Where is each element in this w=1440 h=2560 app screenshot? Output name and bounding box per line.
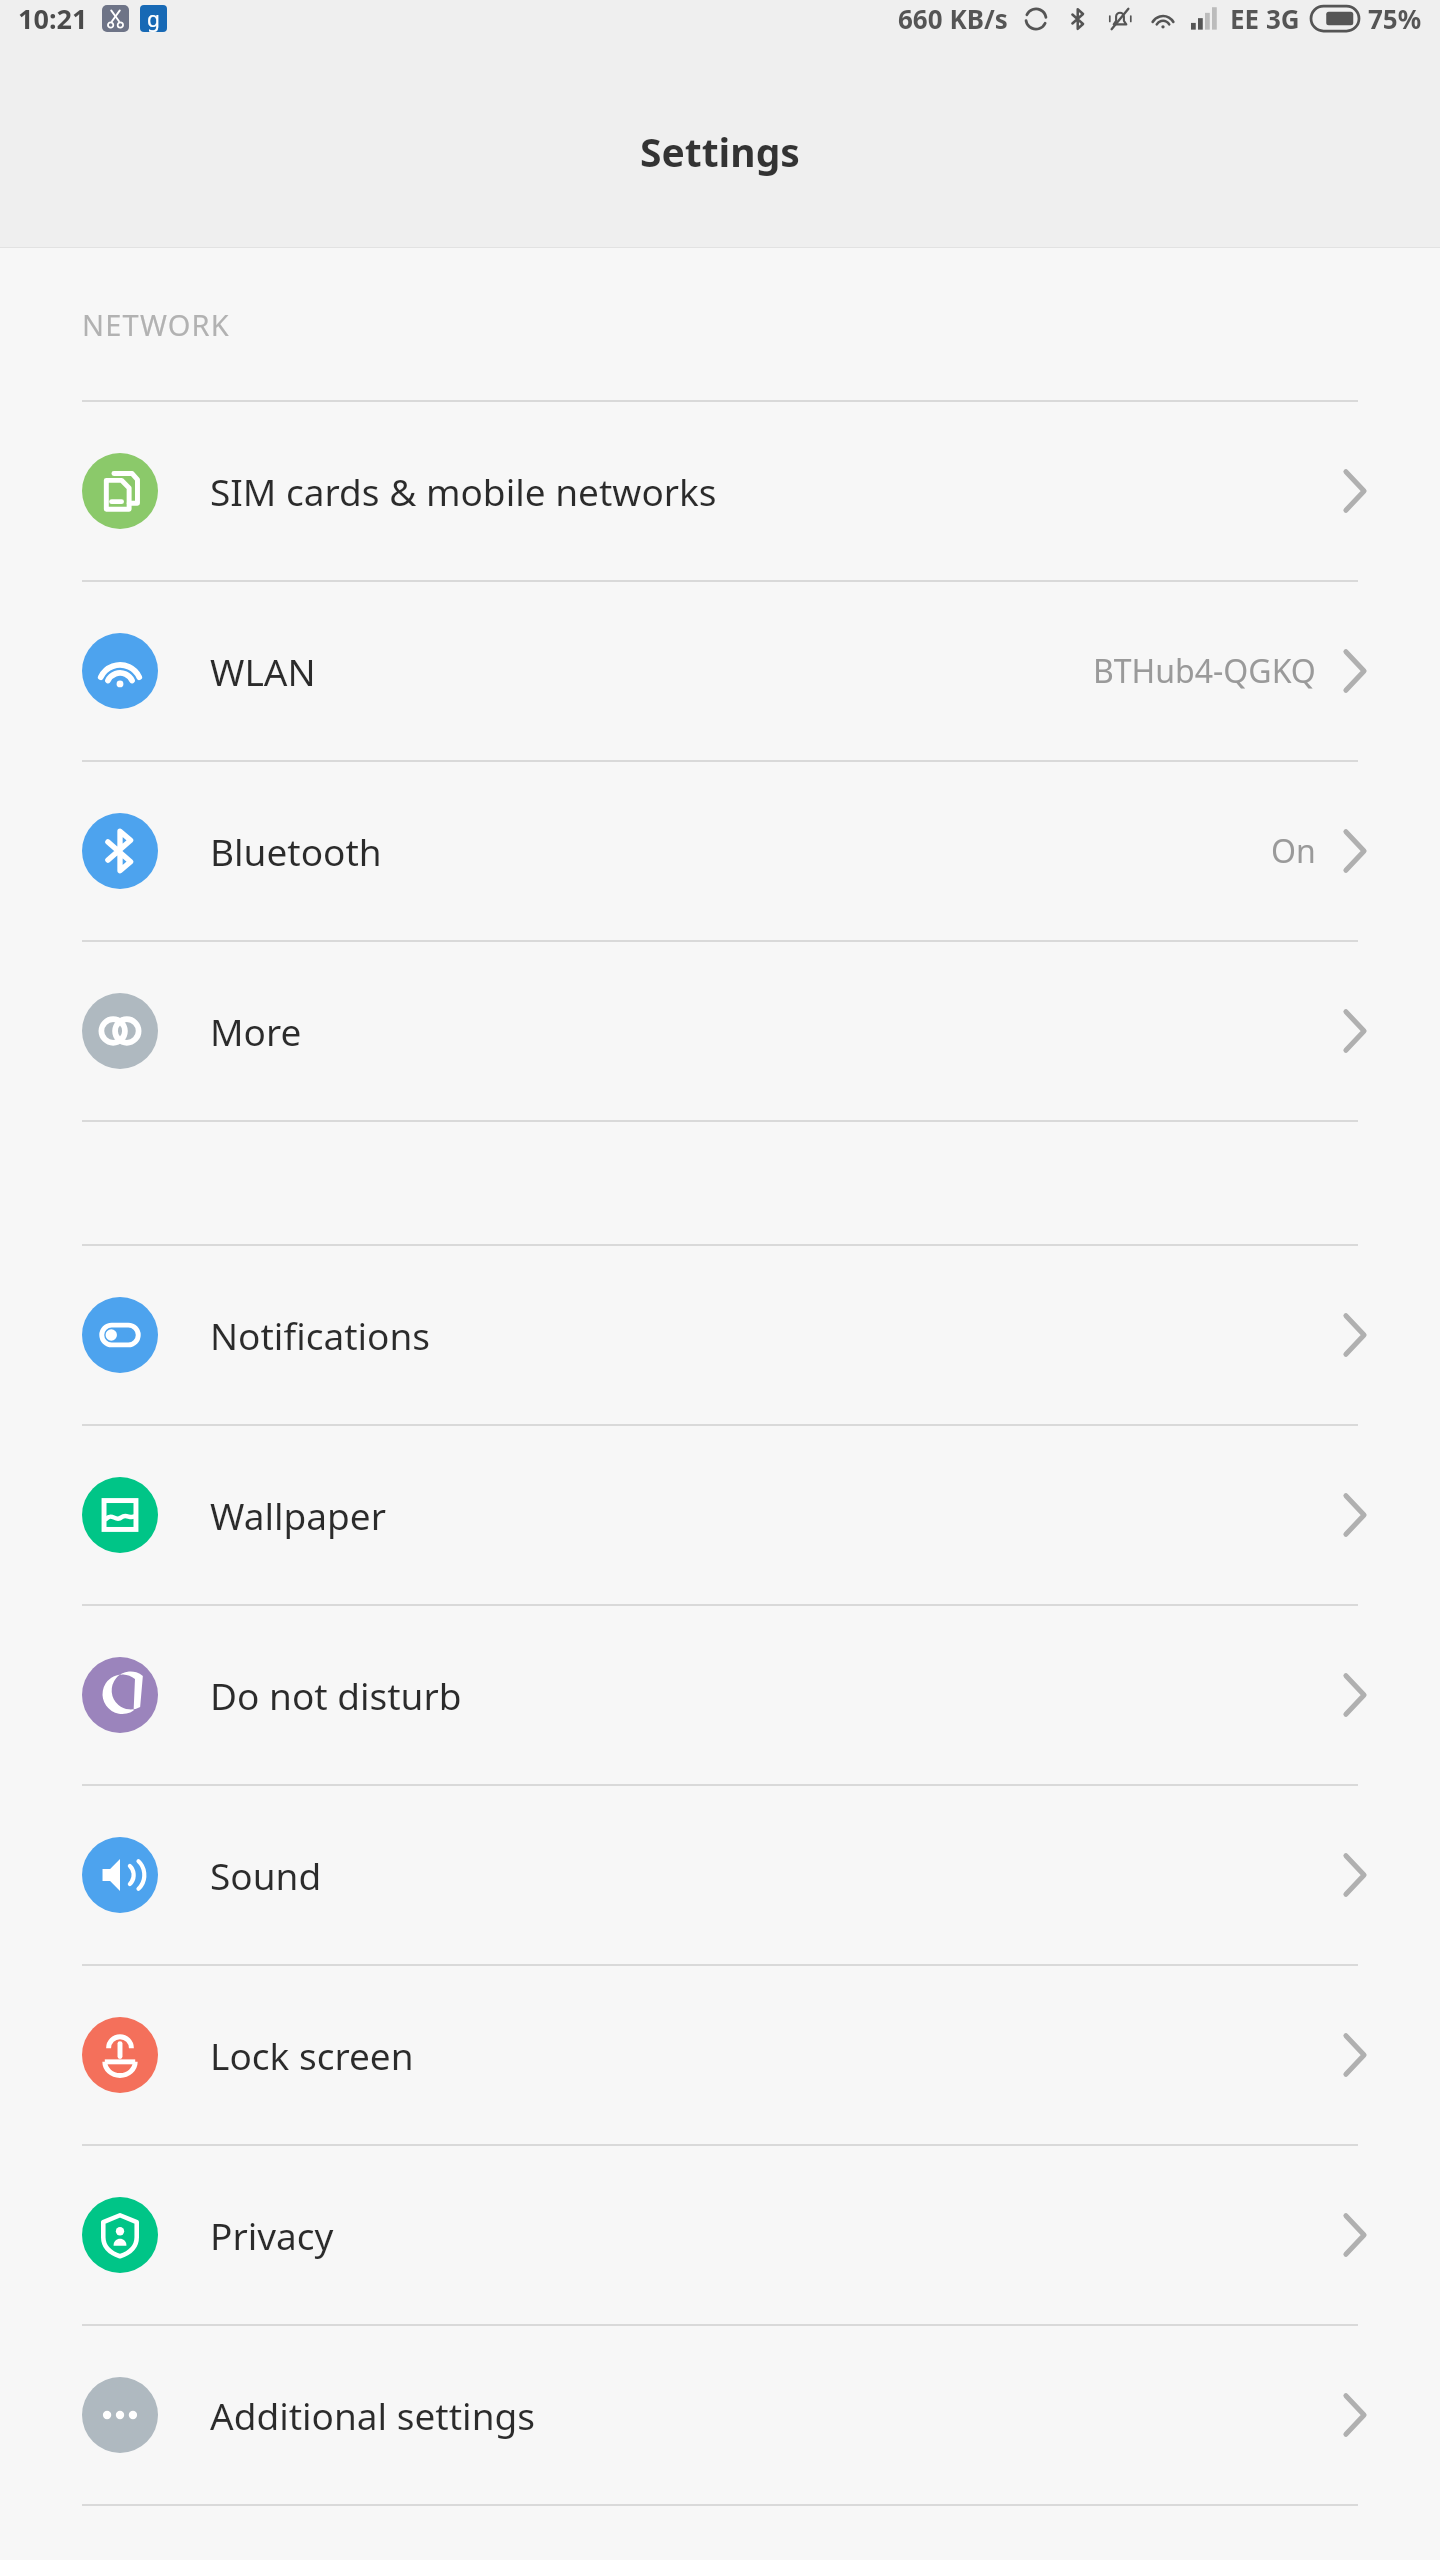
staticText: 660 KB/s bbox=[898, 1, 1008, 36]
staticText: g bbox=[147, 5, 160, 32]
button[interactable]: Additional settings bbox=[0, 2326, 1440, 2504]
button[interactable]: Notifications bbox=[0, 1246, 1440, 1424]
button[interactable]: More bbox=[0, 942, 1440, 1120]
button[interactable]: SIM cards & mobile networks bbox=[0, 402, 1440, 580]
staticText: Settings bbox=[640, 125, 800, 178]
staticText: Do not disturb bbox=[210, 1670, 462, 1720]
staticText: 75% bbox=[1368, 1, 1422, 36]
staticText: Sound bbox=[210, 1850, 322, 1900]
button[interactable]: Lock screen bbox=[0, 1966, 1440, 2144]
staticText: Wallpaper bbox=[210, 1490, 386, 1540]
staticText: 10:21 bbox=[18, 0, 88, 37]
staticText: On bbox=[1271, 829, 1316, 873]
button[interactable]: Privacy bbox=[0, 2146, 1440, 2324]
button[interactable]: Sound bbox=[0, 1786, 1440, 1964]
staticText: WLAN bbox=[210, 646, 316, 696]
staticText: SIM cards & mobile networks bbox=[210, 466, 717, 516]
staticText: EE 3G bbox=[1230, 1, 1300, 36]
staticText: BTHub4-QGKQ bbox=[1093, 649, 1316, 693]
staticText: Lock screen bbox=[210, 2030, 414, 2080]
staticText: More bbox=[210, 1006, 302, 1056]
staticText: NETWORK bbox=[82, 305, 231, 344]
staticText: Bluetooth bbox=[210, 826, 382, 876]
button[interactable]: Bluetooth bbox=[0, 762, 1440, 940]
button[interactable]: Wallpaper bbox=[0, 1426, 1440, 1604]
staticText: Additional settings bbox=[210, 2390, 535, 2440]
button[interactable]: Do not disturb bbox=[0, 1606, 1440, 1784]
staticText: Privacy bbox=[210, 2210, 334, 2260]
staticText: Notifications bbox=[210, 1310, 431, 1360]
button[interactable]: WLAN bbox=[0, 582, 1440, 760]
